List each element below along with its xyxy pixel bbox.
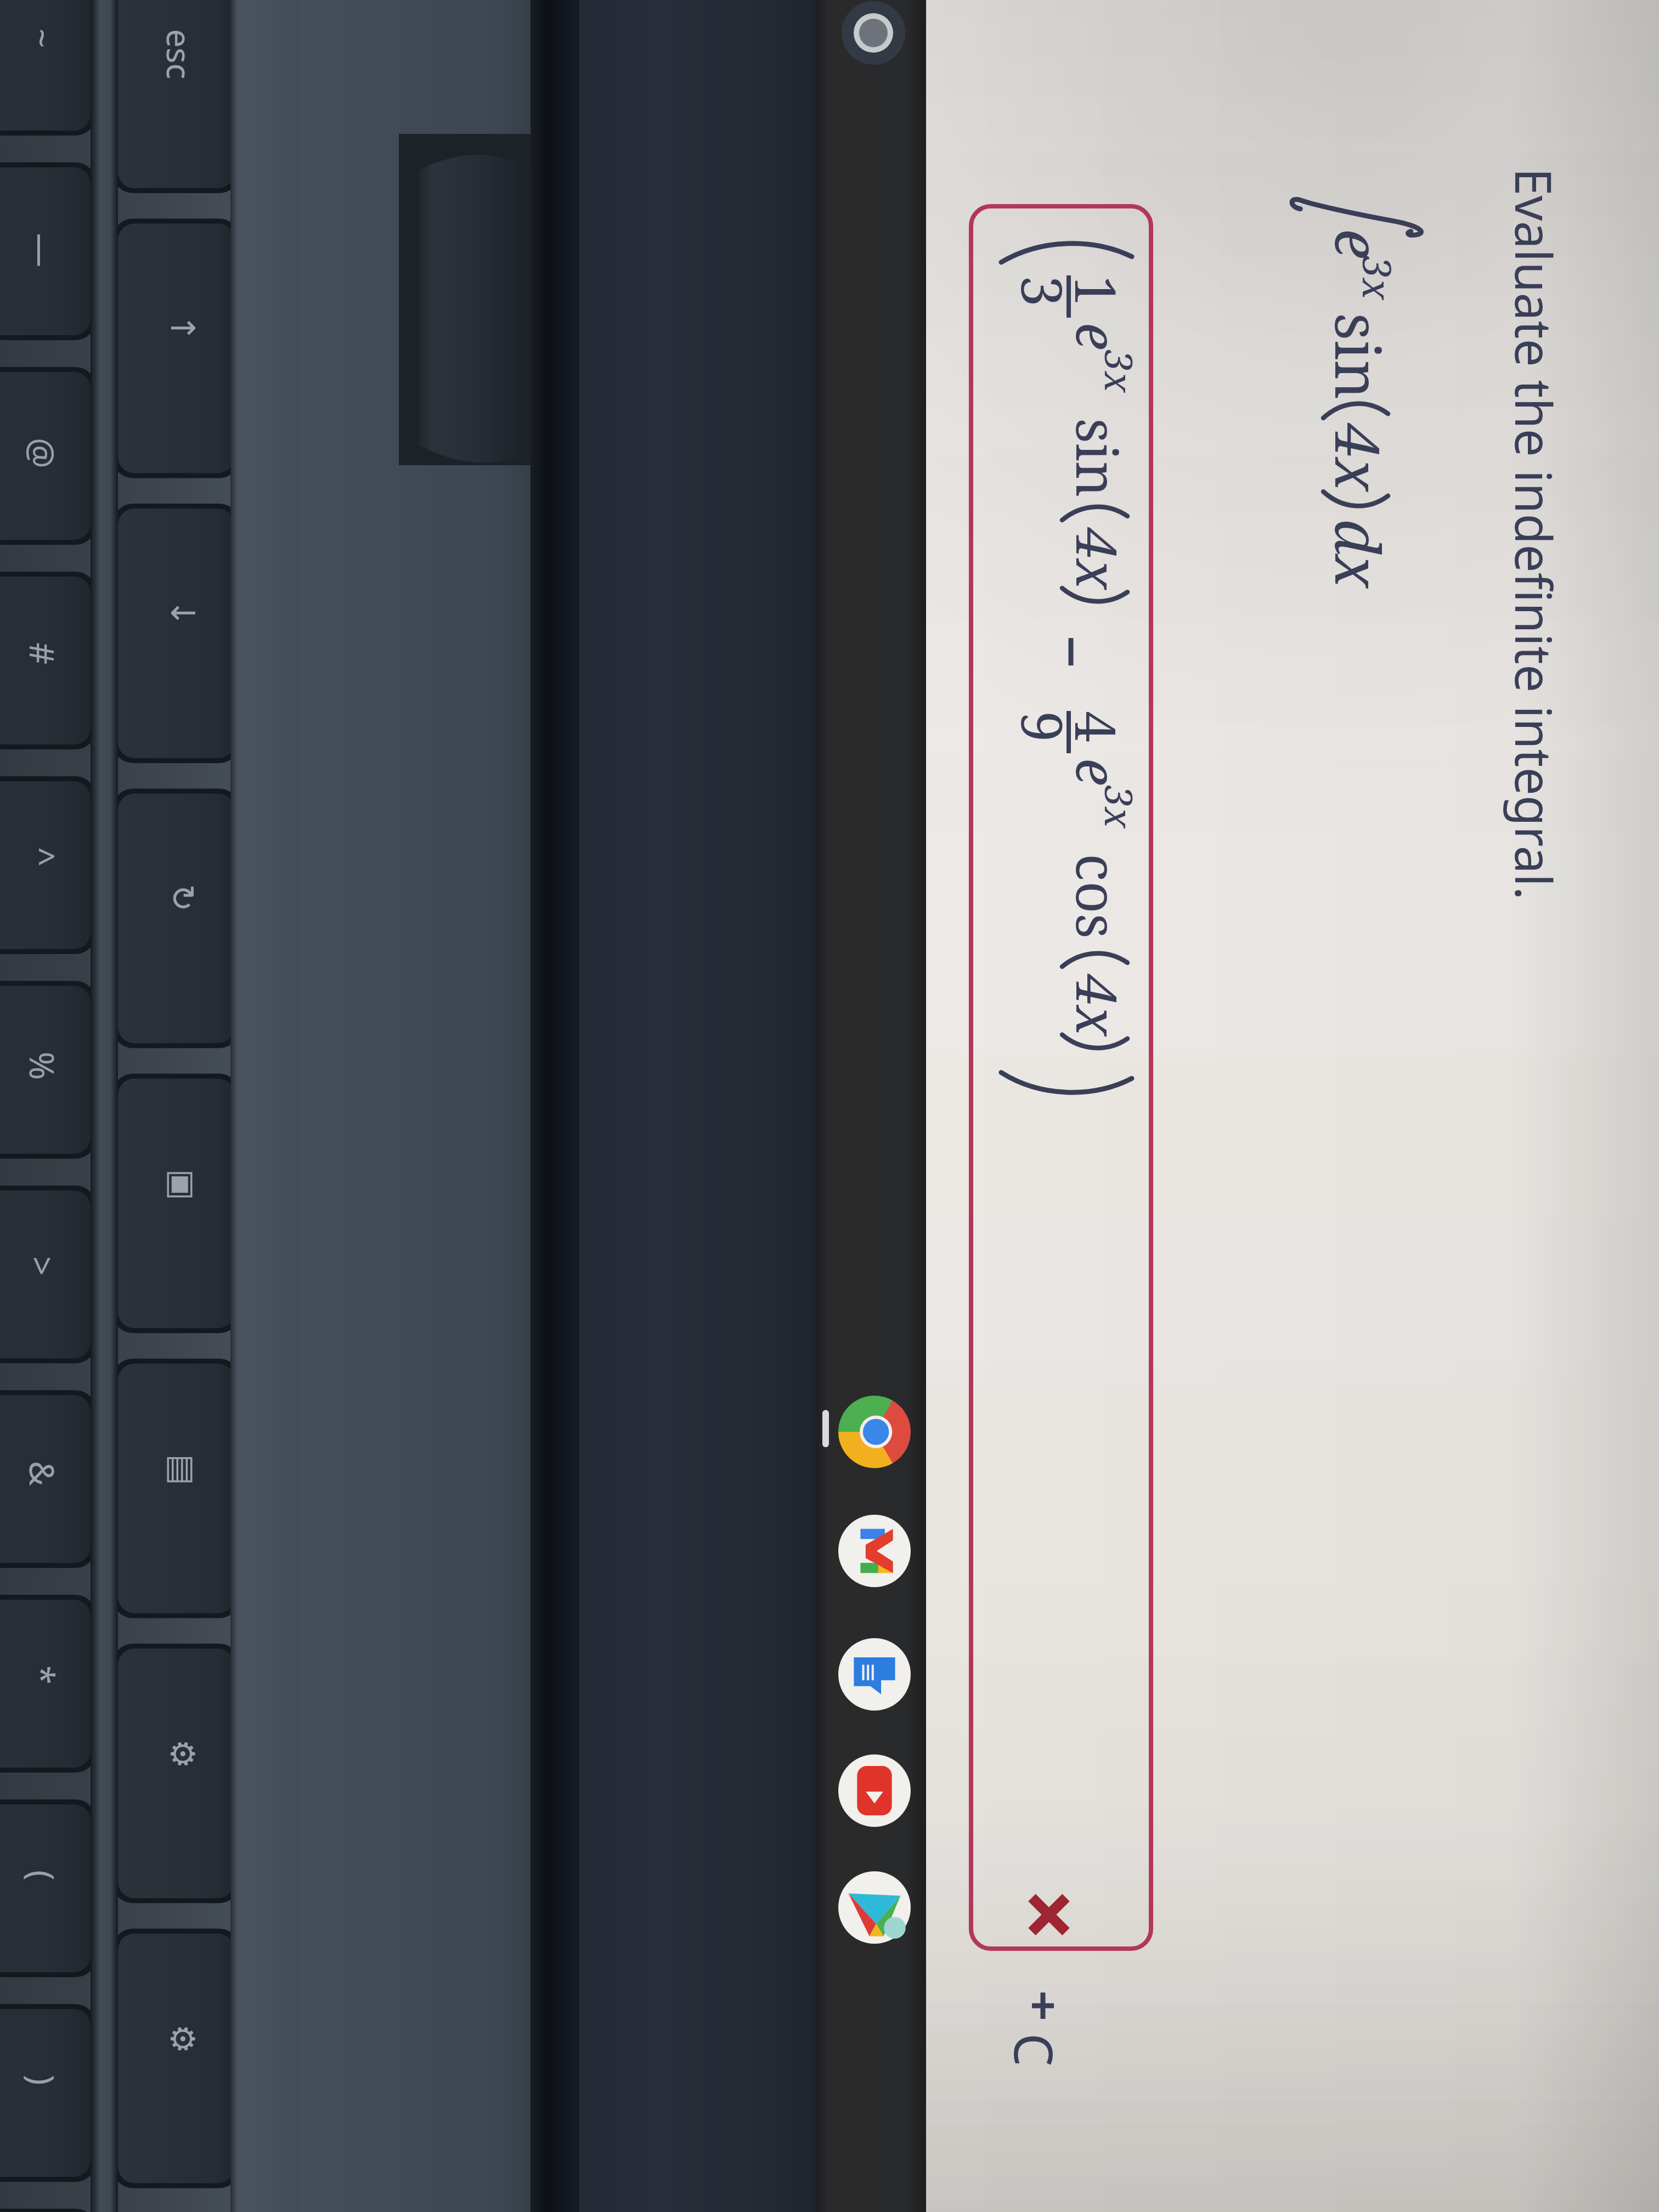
button[interactable]: Google Drive bbox=[838, 1871, 911, 1944]
button[interactable]: Chrome bbox=[838, 1396, 911, 1468]
button[interactable]: YouTube bbox=[838, 1754, 911, 1827]
button[interactable]: Google Chat bbox=[838, 1638, 911, 1711]
button[interactable]: Answer field bbox=[971, 206, 1151, 1949]
button[interactable]: Photo of a laptop screen showing a calcu… bbox=[0, 0, 1659, 2212]
button[interactable]: Gmail bbox=[838, 1515, 911, 1587]
